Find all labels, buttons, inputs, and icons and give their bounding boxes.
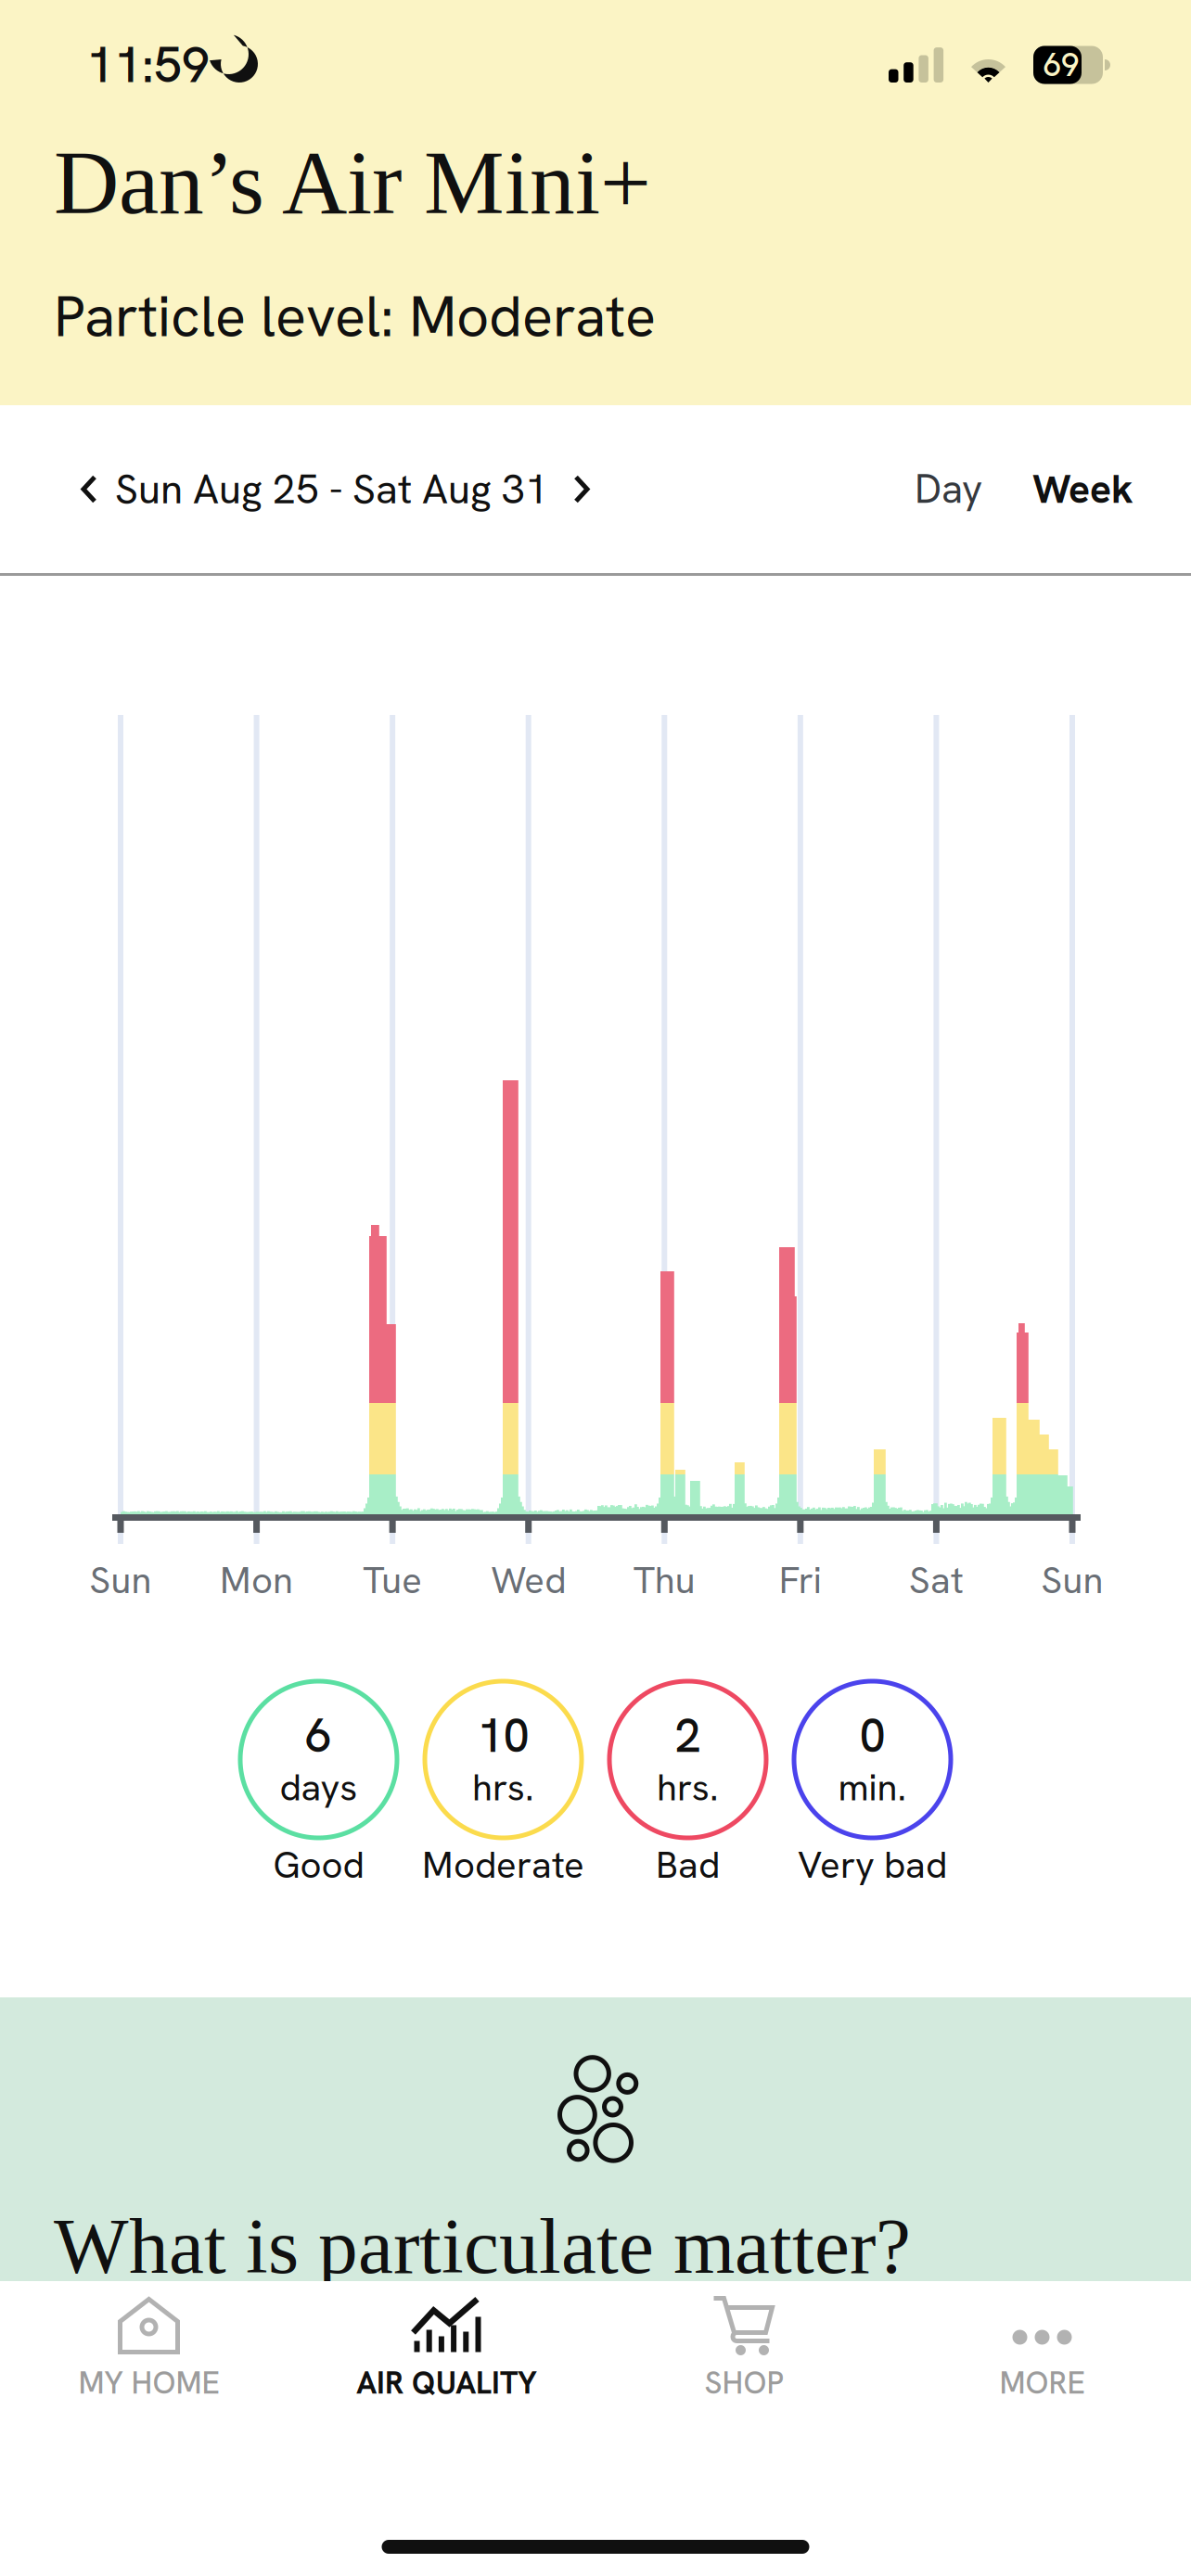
staticText: Day [915,463,982,515]
staticText: SHOP [704,2363,784,2403]
staticText: Sun Aug 25 - Sat Aug 31 [115,463,548,516]
button[interactable]: AIR QUALITY [298,2294,595,2433]
staticText: Week [1032,463,1133,515]
staticText: What is particulate matter? [54,2202,911,2290]
button[interactable]: MORE [893,2294,1191,2433]
staticText: MY HOME [78,2363,219,2403]
staticText: 10 [477,1705,529,1766]
staticText: MORE [999,2363,1085,2403]
staticText: Sun [90,1556,152,1604]
staticText: Very bad [798,1841,947,1889]
staticText: Mon [220,1556,293,1604]
staticText: Good [273,1841,364,1889]
staticText: 11:59 [86,33,210,97]
button[interactable]: SHOP [595,2294,893,2433]
staticText: hrs. [472,1763,534,1811]
staticText: min. [838,1763,907,1811]
button[interactable]: Sun Aug 25 - Sat Aug 31 [115,447,548,531]
button[interactable]: Next week [548,447,615,531]
button[interactable]: MY HOME [0,2294,298,2433]
staticText: 6 [306,1705,332,1766]
staticText: Bad [656,1841,720,1889]
button[interactable]: Previous week [63,447,115,531]
button[interactable]: Day [915,447,982,531]
staticText: Sat [909,1556,964,1604]
staticText: AIR QUALITY [356,2363,537,2403]
staticText: hrs. [657,1763,719,1811]
staticText: Moderate [422,1841,584,1889]
staticText: 69 [1044,44,1079,86]
staticText: Dan’s Air Mini+ [54,133,651,233]
button[interactable]: Week [982,447,1133,531]
staticText: Thu [633,1556,695,1604]
button[interactable]: What is particulate matter? [0,1997,1191,2281]
staticText: Wed [491,1556,566,1604]
staticText: Particle level: Moderate [54,279,656,353]
staticText: days [280,1763,358,1811]
staticText: Fri [779,1556,822,1604]
staticText: 2 [675,1705,701,1766]
staticText: 0 [859,1705,885,1766]
staticText: Sun [1041,1556,1103,1604]
staticText: Tue [363,1556,422,1604]
